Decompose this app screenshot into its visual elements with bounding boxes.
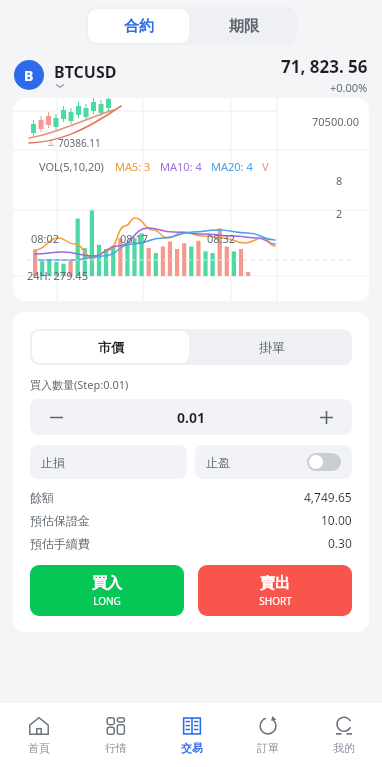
- staticText: 8: [336, 173, 343, 188]
- button[interactable]: Increase: [300, 399, 352, 435]
- button[interactable]: 止盈: [195, 445, 352, 479]
- button[interactable]: 我的: [306, 703, 382, 767]
- staticText: 70500.00: [312, 114, 359, 129]
- staticText: 0.01: [177, 408, 205, 427]
- staticText: 訂單: [257, 741, 279, 755]
- staticText: 10.00: [321, 512, 352, 528]
- staticText: LONG: [93, 594, 121, 608]
- staticText: 行情: [105, 741, 127, 755]
- staticText: MA10: 4: [160, 159, 202, 174]
- staticText: 08:17: [120, 231, 149, 246]
- staticText: MA5: 3: [115, 159, 151, 174]
- button[interactable]: 買入: [30, 565, 184, 616]
- button[interactable]: 掛單: [191, 329, 352, 365]
- staticText: ⊥: [47, 138, 55, 148]
- button[interactable]: 市價: [32, 331, 189, 363]
- button[interactable]: 交易: [154, 703, 230, 767]
- staticText: 71, 823. 56: [281, 55, 368, 78]
- staticText: 70386.11: [58, 136, 101, 150]
- button[interactable]: 合約: [88, 9, 189, 43]
- staticText: V: [262, 159, 269, 174]
- staticText: 24H: 279.45: [27, 268, 88, 283]
- staticText: 首頁: [28, 741, 50, 755]
- button[interactable]: Select symbol: [54, 61, 117, 89]
- staticText: 預估手續費: [30, 536, 90, 551]
- staticText: B: [24, 66, 34, 85]
- staticText: BTCUSD: [54, 61, 117, 83]
- button[interactable]: 行情: [77, 703, 154, 767]
- staticText: 4,749.65: [304, 489, 352, 505]
- staticText: 我的: [333, 741, 355, 755]
- staticText: 08:02: [31, 231, 60, 246]
- staticText: 市價: [98, 339, 124, 355]
- staticText: 預估保證金: [30, 513, 90, 528]
- staticText: 08:32: [207, 231, 236, 246]
- staticText: 掛單: [259, 339, 285, 355]
- button[interactable]: Toggle take profit: [307, 453, 341, 471]
- staticText: 交易: [181, 741, 203, 755]
- staticText: 0.30: [328, 535, 352, 551]
- staticText: 止盈: [206, 455, 230, 470]
- staticText: VOL(5,10,20): [39, 159, 104, 174]
- staticText: 止損: [41, 455, 65, 470]
- button[interactable]: 賣出: [198, 565, 352, 616]
- button[interactable]: 期限: [191, 7, 297, 45]
- staticText: 期限: [229, 17, 259, 36]
- button[interactable]: 訂單: [230, 703, 306, 767]
- button[interactable]: B: [14, 60, 44, 90]
- button[interactable]: 止損: [30, 445, 187, 479]
- button[interactable]: 首頁: [0, 703, 77, 767]
- staticText: MA20: 4: [211, 159, 253, 174]
- staticText: 買入數量(Step:0.01): [30, 377, 129, 392]
- staticText: 合約: [124, 17, 154, 36]
- staticText: +0.00%: [330, 80, 368, 95]
- staticText: 賣出: [260, 574, 290, 593]
- staticText: SHORT: [259, 594, 292, 608]
- staticText: 買入: [92, 574, 122, 593]
- button[interactable]: Decrease: [30, 399, 82, 435]
- staticText: 2: [336, 206, 343, 221]
- staticText: 餘額: [30, 490, 54, 505]
